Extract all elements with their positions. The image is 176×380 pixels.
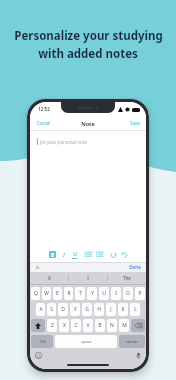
staticText: F — [74, 306, 77, 313]
button[interactable]: U — [99, 287, 109, 300]
button[interactable]: T — [75, 287, 85, 300]
button[interactable]: P — [135, 287, 145, 300]
button[interactable]: F — [70, 303, 80, 316]
button[interactable]: O — [123, 287, 133, 300]
button[interactable]: H — [94, 303, 104, 316]
staticText: Done — [129, 264, 141, 270]
staticText: D — [61, 306, 65, 313]
staticText: L — [134, 306, 137, 313]
staticText: U — [73, 251, 77, 258]
button[interactable]: E — [53, 287, 62, 300]
staticText: X — [63, 322, 66, 329]
button[interactable]: I — [111, 287, 121, 300]
button[interactable]: Dictate — [134, 351, 142, 359]
staticText: S — [50, 306, 53, 313]
staticText: O — [126, 290, 130, 297]
button[interactable]: Emoji — [34, 351, 42, 359]
button[interactable]: Key — [31, 319, 45, 332]
button[interactable]: Format — [47, 249, 58, 260]
staticText: A — [48, 275, 51, 281]
button[interactable]: J — [106, 303, 116, 316]
button[interactable]: The — [108, 272, 146, 284]
staticText: N — [110, 322, 114, 329]
button[interactable]: Y — [87, 287, 97, 300]
staticText: V — [86, 322, 90, 329]
staticText: I — [87, 275, 89, 281]
staticText: U — [102, 290, 106, 297]
staticText: P — [138, 290, 142, 297]
staticText: B — [98, 322, 102, 329]
staticText: R — [67, 290, 71, 297]
button[interactable]: I — [69, 272, 107, 284]
button[interactable]: C — [71, 319, 81, 332]
button[interactable]: G — [82, 303, 92, 316]
button[interactable]: Format — [69, 249, 80, 260]
button[interactable]: Save — [124, 117, 146, 129]
button[interactable]: W — [42, 287, 51, 300]
button[interactable]: A — [30, 272, 68, 284]
button[interactable]: K — [118, 303, 128, 316]
staticText: A — [39, 306, 43, 313]
button[interactable]: V — [83, 319, 93, 332]
button[interactable]: Format — [94, 249, 105, 260]
button[interactable]: Q — [31, 287, 40, 300]
button[interactable]: Key — [131, 319, 145, 332]
staticText: space — [81, 339, 92, 344]
staticText: J — [110, 306, 112, 313]
button[interactable]: Format — [119, 249, 130, 260]
button[interactable]: return — [119, 335, 145, 348]
staticText: 12:52 — [38, 106, 50, 112]
button[interactable]: M — [119, 319, 129, 332]
button[interactable]: Format — [58, 249, 69, 260]
staticText: 123 — [39, 339, 46, 344]
button[interactable]: 123 — [31, 335, 53, 348]
button[interactable]: Z — [47, 319, 57, 332]
staticText: Note — [81, 120, 95, 127]
button[interactable]: Cancel — [30, 117, 57, 129]
staticText: C — [74, 322, 78, 329]
button[interactable]: X — [59, 319, 69, 332]
staticText: I — [63, 251, 65, 258]
button[interactable]: B — [95, 319, 105, 332]
staticText: K — [121, 306, 125, 313]
staticText: Y — [91, 290, 94, 297]
button[interactable]: R — [64, 287, 73, 300]
staticText: H — [97, 306, 101, 313]
staticText: B — [51, 252, 54, 258]
staticText: I — [115, 290, 117, 297]
staticText: G — [85, 306, 89, 313]
button[interactable]: L — [130, 303, 140, 316]
staticText: Jot your personal note — [40, 139, 87, 145]
staticText: W — [44, 290, 49, 297]
staticText: M — [122, 322, 127, 329]
button[interactable]: Done — [124, 262, 146, 272]
staticText: with added notes — [38, 46, 138, 62]
button[interactable]: N — [107, 319, 117, 332]
staticText: Z — [51, 322, 54, 329]
staticText: Q — [34, 290, 38, 297]
button[interactable]: Format — [108, 249, 119, 260]
button[interactable]: A — [36, 303, 45, 316]
button[interactable]: D — [58, 303, 68, 316]
button[interactable]: Format — [83, 249, 94, 260]
staticText: The — [123, 275, 131, 281]
staticText: Cancel — [36, 120, 51, 126]
staticText: E — [56, 290, 59, 297]
button[interactable]: S — [47, 303, 56, 316]
staticText: return — [126, 339, 138, 344]
staticText: Save — [130, 120, 140, 126]
staticText: Personalize your studying — [14, 28, 163, 44]
button[interactable]: space — [55, 335, 117, 348]
staticText: T — [79, 290, 82, 297]
